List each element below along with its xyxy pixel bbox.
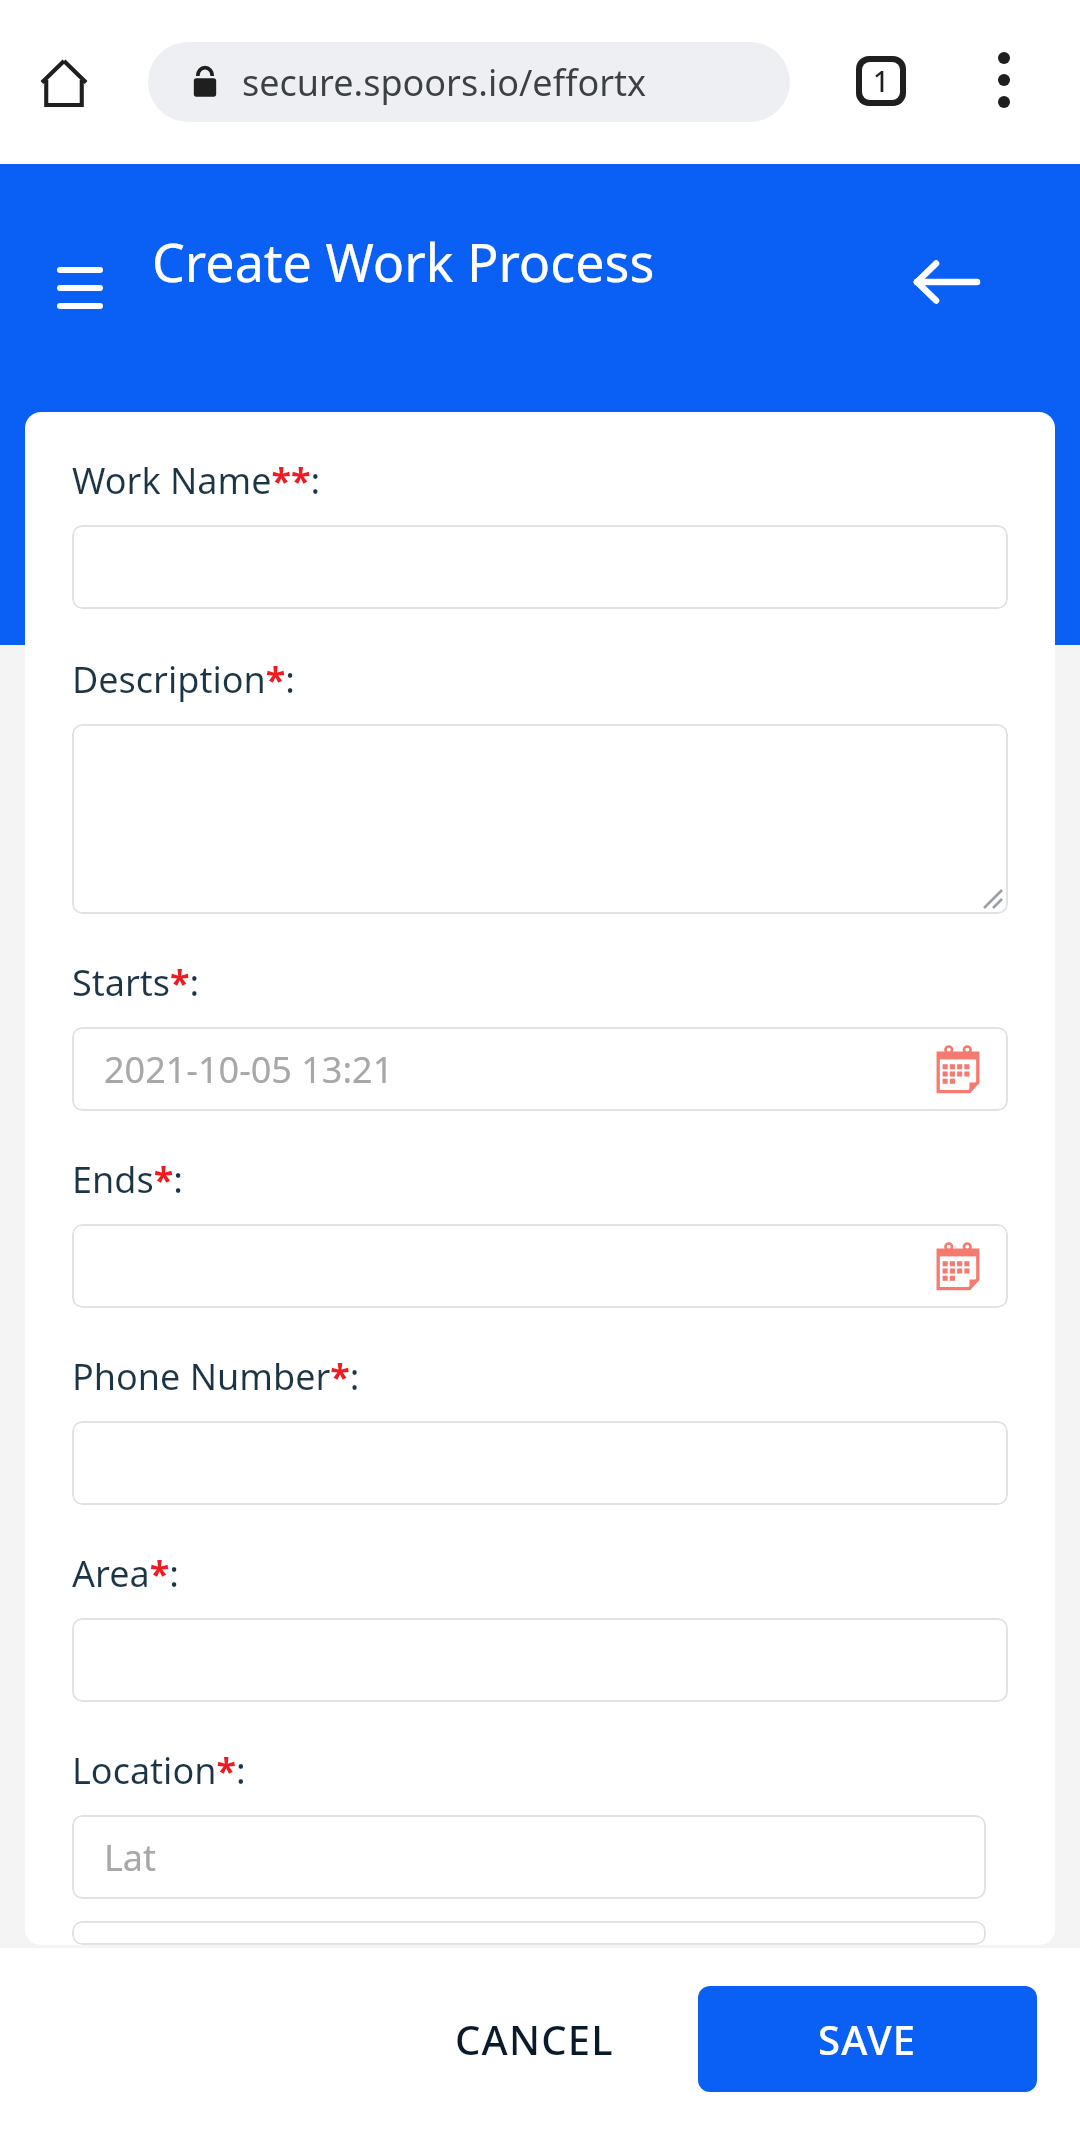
button[interactable]: Lat <box>72 1815 986 1899</box>
staticText: Location*: <box>72 1746 246 1795</box>
staticText: secure.spoors.io/effortx <box>242 58 647 107</box>
button[interactable]: Tabs <box>850 50 912 112</box>
staticText: Create Work Process <box>152 226 655 297</box>
button[interactable] <box>72 1421 1008 1505</box>
button[interactable] <box>72 1921 986 1945</box>
button[interactable] <box>72 724 1008 914</box>
staticText: Description*: <box>72 655 295 704</box>
staticText: Area*: <box>72 1549 179 1598</box>
staticText: 2021-10-05 13:21 <box>104 1045 394 1094</box>
button[interactable]: Pick date <box>930 1238 986 1294</box>
button[interactable]: secure.spoors.io/effortx <box>148 42 790 122</box>
staticText: Ends*: <box>72 1155 183 1204</box>
staticText: Work Name**: <box>72 456 321 505</box>
button[interactable]: 2021-10-05 13:21 <box>72 1027 1008 1111</box>
button[interactable]: CANCEL <box>421 1987 648 2091</box>
button[interactable]: SAVE <box>698 1986 1037 2092</box>
button[interactable]: Pick date <box>930 1041 986 1097</box>
button[interactable]: Home <box>28 47 100 119</box>
button[interactable]: Back <box>898 234 994 330</box>
button[interactable] <box>72 525 1008 609</box>
button[interactable]: Menu <box>34 242 126 334</box>
button[interactable]: Pick date <box>72 1224 1008 1308</box>
staticText: Phone Number*: <box>72 1352 360 1401</box>
staticText: 1 <box>873 62 890 100</box>
staticText: SAVE <box>818 2012 917 2066</box>
staticText: Lat <box>104 1833 157 1882</box>
staticText: CANCEL <box>455 2012 614 2066</box>
button[interactable]: More options <box>968 44 1040 116</box>
button[interactable] <box>72 1618 1008 1702</box>
staticText: Starts*: <box>72 958 200 1007</box>
